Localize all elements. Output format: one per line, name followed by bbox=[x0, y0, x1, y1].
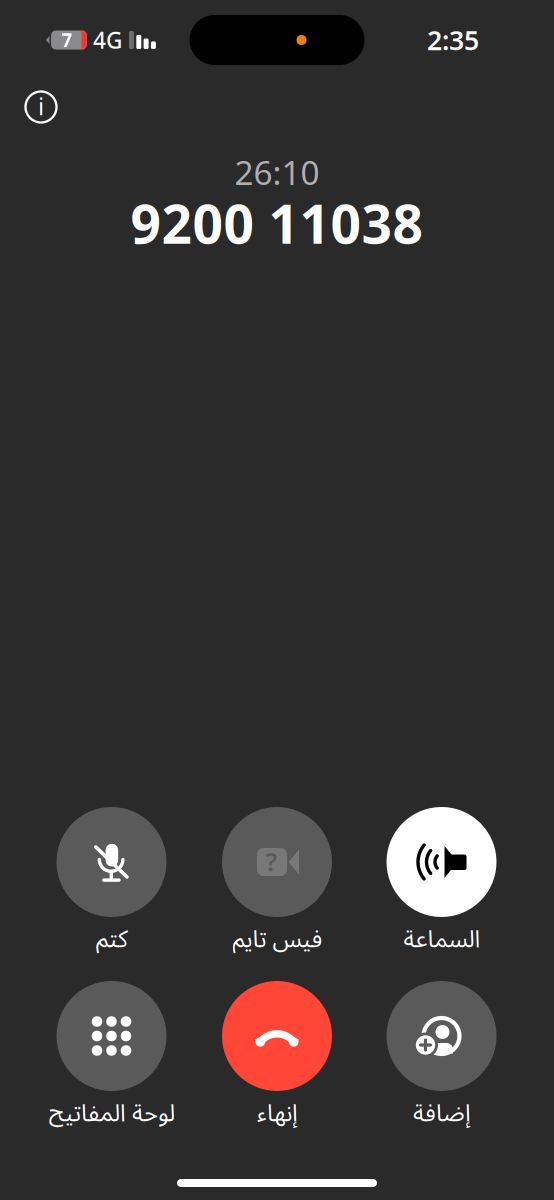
staticText: لوحة المفاتيح bbox=[48, 1096, 174, 1128]
staticText: إنهاء bbox=[256, 1096, 297, 1128]
staticText: ? bbox=[265, 845, 277, 878]
staticText: 26:10 bbox=[234, 150, 319, 194]
staticText: إضافة bbox=[412, 1096, 470, 1128]
staticText: 4G bbox=[93, 25, 122, 55]
button[interactable]: السماعة bbox=[359, 807, 524, 951]
button[interactable]: Call info bbox=[15, 77, 67, 129]
staticText: فيس تايم bbox=[232, 922, 322, 954]
staticText: كتم bbox=[95, 922, 127, 954]
button[interactable]: كتم bbox=[29, 807, 194, 951]
button[interactable]: إنهاء bbox=[194, 981, 359, 1125]
button[interactable]: إضافة bbox=[359, 981, 524, 1125]
staticText: السماعة bbox=[403, 922, 480, 954]
button[interactable]: ? bbox=[194, 807, 359, 951]
staticText: i bbox=[38, 90, 44, 122]
staticText: 2:35 bbox=[427, 22, 479, 58]
button[interactable]: لوحة المفاتيح bbox=[29, 981, 194, 1125]
staticText: 9200 11038 bbox=[130, 188, 423, 258]
staticText: 7 bbox=[61, 28, 72, 52]
